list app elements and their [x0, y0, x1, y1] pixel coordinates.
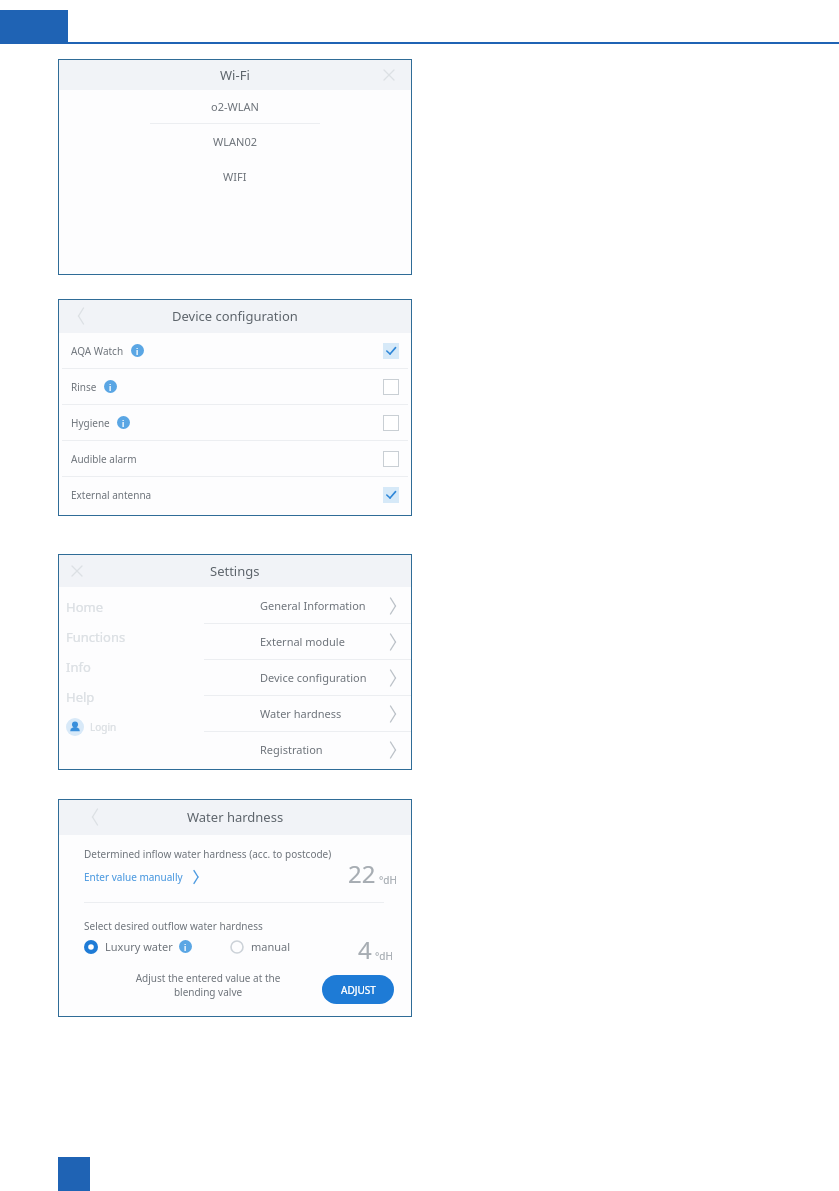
staticText: WLAN02	[213, 134, 257, 149]
staticText: i	[109, 381, 112, 393]
button[interactable]: Info	[66, 652, 186, 682]
staticText: External antenna	[71, 488, 152, 502]
staticText: i	[184, 941, 187, 953]
button[interactable]: Device configuration	[200, 660, 412, 695]
button[interactable]: Help	[66, 682, 186, 712]
staticText: Water hardness	[187, 808, 284, 826]
button[interactable]: Back	[72, 307, 90, 325]
staticText: Audible alarm	[71, 452, 137, 466]
staticText: Home	[66, 598, 103, 616]
staticText: Wi-Fi	[220, 66, 250, 84]
staticText: Login	[90, 720, 117, 734]
button[interactable]: Luxury water	[84, 939, 192, 954]
staticText: o2-WLAN	[211, 99, 259, 114]
staticText: Rinse	[71, 380, 97, 394]
button[interactable]: Login	[66, 712, 186, 742]
button[interactable]: o2-WLAN	[58, 90, 412, 123]
staticText: Enter value manually	[84, 870, 183, 884]
staticText: °dH	[375, 949, 393, 963]
staticText: manual	[251, 939, 291, 954]
staticText: Device configuration	[260, 670, 384, 685]
staticText: Water hardness	[260, 706, 384, 721]
button[interactable]: Audible alarm	[58, 441, 412, 476]
staticText: Determined inflow water hardness (acc. t…	[84, 847, 332, 861]
staticText: AQA Watch	[71, 344, 124, 358]
staticText: General Information	[260, 598, 384, 613]
button[interactable]: Home	[66, 592, 186, 622]
button[interactable]: WLAN02	[58, 124, 412, 159]
button[interactable]: External antenna	[58, 477, 412, 512]
button[interactable]: Close	[380, 66, 398, 84]
staticText: Registration	[260, 742, 384, 757]
staticText: Luxury water	[105, 939, 173, 954]
staticText: Info	[66, 658, 91, 676]
staticText: External module	[260, 634, 384, 649]
staticText: ADJUST	[341, 983, 376, 997]
staticText: Hygiene	[71, 416, 110, 430]
button[interactable]: General Information	[200, 588, 412, 623]
staticText: i	[136, 345, 139, 357]
button[interactable]: Close	[68, 562, 86, 580]
button[interactable]: Hygiene	[58, 405, 412, 440]
staticText: 22	[348, 857, 376, 890]
staticText: Help	[66, 688, 95, 706]
button[interactable]: Water hardness	[200, 696, 412, 731]
staticText: °dH	[379, 873, 397, 887]
staticText: Settings	[210, 562, 260, 580]
staticText: Device configuration	[172, 307, 298, 325]
button[interactable]: AQA Watch	[58, 333, 412, 368]
staticText: 4	[358, 933, 372, 966]
button[interactable]: manual	[230, 939, 291, 954]
button[interactable]: Enter value manually	[84, 868, 205, 886]
button[interactable]: WIFI	[58, 159, 412, 194]
staticText: Select desired outflow water hardness	[84, 919, 263, 933]
button[interactable]: Registration	[200, 732, 412, 767]
button[interactable]: ADJUST	[322, 975, 394, 1004]
button[interactable]: External module	[200, 624, 412, 659]
staticText: i	[122, 417, 125, 429]
button[interactable]: Back	[86, 808, 104, 826]
button[interactable]: Functions	[66, 622, 186, 652]
staticText: Adjust the entered value at the blending…	[108, 971, 308, 999]
button[interactable]: Rinse	[58, 369, 412, 404]
staticText: Functions	[66, 628, 126, 646]
staticText: WIFI	[223, 169, 247, 184]
